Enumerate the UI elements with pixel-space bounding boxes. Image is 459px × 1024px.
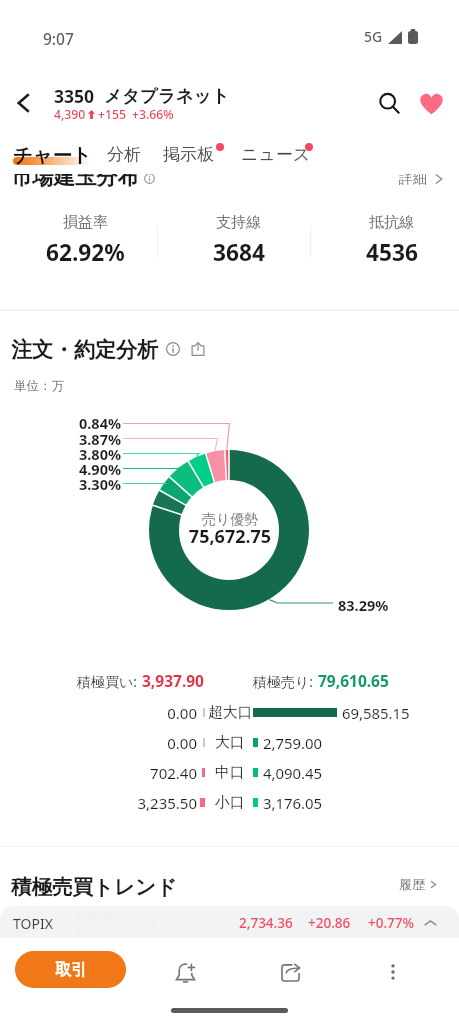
button[interactable]: Share <box>268 950 312 994</box>
staticText: 分析 <box>107 144 141 165</box>
staticText: 2,734.36 <box>239 914 293 932</box>
button[interactable]: チャート <box>13 143 92 167</box>
staticText: 62.92% <box>46 237 125 268</box>
staticText: 詳細 <box>399 170 427 188</box>
staticText: 79,610.65 <box>318 670 389 691</box>
button[interactable]: Search <box>369 83 409 123</box>
button[interactable]: 支持線 <box>167 213 310 268</box>
button[interactable]: Alerts <box>163 950 207 994</box>
staticText: +155 <box>98 106 126 123</box>
staticText: 中口 <box>215 763 245 782</box>
staticText: 抵抗線 <box>369 213 414 232</box>
staticText: 4,390 <box>54 106 86 123</box>
staticText: +20.86 <box>308 914 351 932</box>
staticText: 4536 <box>366 237 418 268</box>
staticText: 4,090.45 <box>263 763 323 783</box>
staticText: 75,672.75 <box>130 524 330 549</box>
staticText: 3.80% <box>20 444 121 464</box>
button[interactable]: 損益率 <box>14 213 157 268</box>
staticText: 取引 <box>55 960 87 980</box>
button[interactable]: 分析 <box>107 144 141 165</box>
staticText: 注文・約定分析 <box>11 337 158 363</box>
staticText: 積極売買トレンド <box>11 874 177 900</box>
staticText: 0.84% <box>20 413 121 433</box>
button[interactable]: 取引 <box>15 951 126 988</box>
staticText: 69,585.15 <box>342 703 410 723</box>
button[interactable]: Info <box>160 336 186 362</box>
staticText: 2,759.00 <box>263 733 323 753</box>
staticText: 掲示板 <box>163 144 214 165</box>
staticText: 市場建玉分布 <box>11 163 139 190</box>
button[interactable]: More options <box>371 950 415 994</box>
staticText: 履歴 <box>399 876 425 892</box>
staticText: 3350 <box>54 84 95 108</box>
button[interactable]: 抵抗線 <box>320 213 459 268</box>
button[interactable]: 掲示板 <box>163 144 214 165</box>
staticText: 3,176.05 <box>263 793 323 813</box>
staticText: チャート <box>13 143 92 167</box>
staticText: 702.40 <box>90 763 197 783</box>
staticText: 3684 <box>213 237 265 268</box>
staticText: メタプラネット <box>104 85 230 107</box>
staticText: 大口 <box>215 733 245 752</box>
staticText: 超大口 <box>208 703 253 722</box>
staticText: 損益率 <box>63 213 108 232</box>
staticText: 9:07 <box>43 28 74 49</box>
button[interactable]: ニュース <box>241 144 311 165</box>
staticText: 3,235.50 <box>90 793 197 813</box>
staticText: 3,937.90 <box>142 670 204 691</box>
staticText: TOPIX <box>13 914 53 933</box>
button[interactable]: Share <box>185 336 211 362</box>
staticText: 日中 <box>25 916 55 935</box>
staticText: +3.66% <box>132 106 174 123</box>
staticText: 小口 <box>215 793 245 812</box>
staticText: 単位：万 <box>14 378 64 394</box>
staticText: 3.30% <box>20 474 121 494</box>
staticText: 83.29% <box>338 595 389 615</box>
staticText: 売り優勢 <box>202 511 259 529</box>
staticText: 3.87% <box>20 429 121 449</box>
staticText: 0.00 <box>90 703 197 723</box>
staticText: 積極売り: <box>253 672 314 691</box>
staticText: 積極買い: <box>77 672 138 691</box>
staticText: +0.77% <box>368 914 415 932</box>
staticText: 5G <box>364 27 383 46</box>
button[interactable]: Favorite <box>411 83 451 123</box>
staticText: 0.00 <box>90 733 197 753</box>
staticText: 支持線 <box>216 213 261 232</box>
button[interactable]: Back <box>4 83 44 123</box>
staticText: ニュース <box>241 144 311 165</box>
staticText: 4.90% <box>20 459 121 479</box>
